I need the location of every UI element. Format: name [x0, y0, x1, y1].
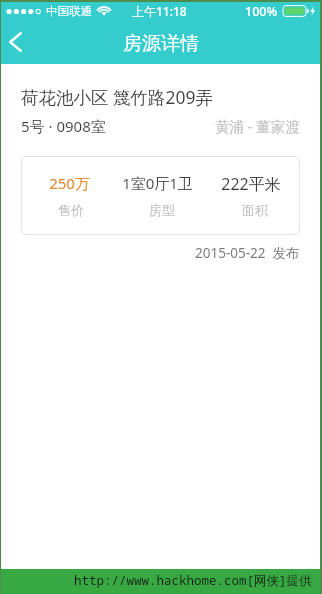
staticText: http://www.hackhome.com[网侠]提供: [74, 572, 312, 589]
staticText: 250万: [49, 173, 90, 193]
staticText: 黄浦 - 董家渡: [215, 116, 300, 136]
staticText: 222平米: [221, 173, 281, 195]
staticText: 面积: [242, 202, 268, 218]
staticText: 100%: [245, 3, 278, 20]
staticText: 荷花池小区 篾竹路209弄: [21, 85, 214, 109]
staticText: 5号 · 0908室: [21, 116, 106, 136]
button[interactable]: Back: [1, 20, 30, 64]
staticText: 中国联通: [46, 4, 92, 18]
staticText: 2015-05-22 发布: [195, 244, 300, 262]
staticText: 1室0厅1卫: [122, 173, 193, 193]
staticText: 上午11:18: [132, 3, 187, 19]
staticText: 房型: [149, 202, 175, 218]
button[interactable]: 250万: [21, 156, 300, 235]
staticText: 售价: [58, 202, 84, 218]
staticText: 房源详情: [123, 32, 199, 56]
